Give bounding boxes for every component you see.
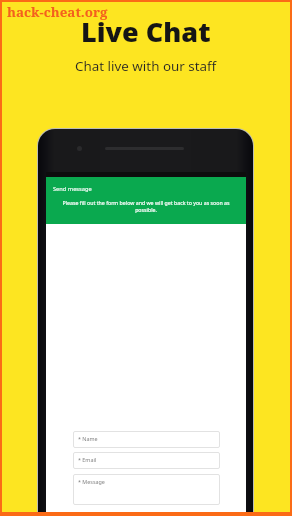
staticText: Send message [53,185,92,193]
button[interactable]: Send message [46,177,246,224]
staticText: * Email [78,456,97,463]
button[interactable]: * Email [73,452,220,469]
staticText: Please fill out the form below and we wi… [59,199,233,213]
button[interactable]: * Name [73,431,220,448]
other: Front camera [77,146,82,151]
button[interactable]: * Message [73,474,220,505]
staticText: Live Chat [81,13,211,50]
staticText: * Name [78,435,98,442]
staticText: Chat live with our staff [75,57,217,75]
staticText: hack-cheat.org [7,3,108,21]
staticText: * Message [78,478,105,485]
